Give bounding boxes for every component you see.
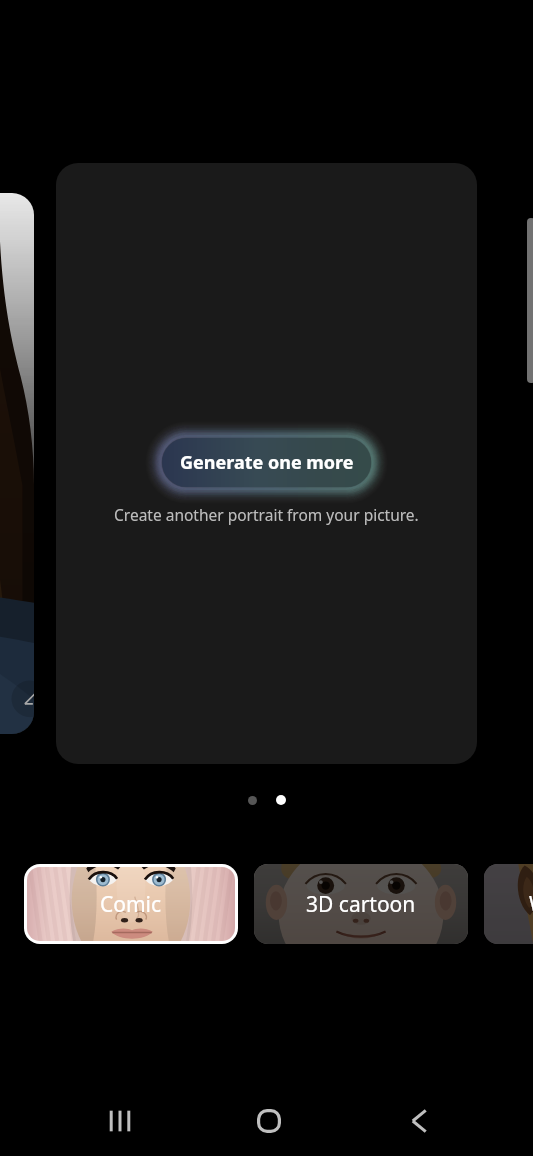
staticText: 3D cartoon <box>306 890 416 919</box>
button[interactable]: Home <box>245 1097 293 1145</box>
staticText: Comic <box>100 890 162 919</box>
staticText: Generate one more <box>180 450 354 475</box>
button[interactable]: Generate one more <box>162 438 371 487</box>
button[interactable]: Recent apps <box>96 1097 144 1145</box>
button[interactable]: Watercolor <box>484 864 533 944</box>
button[interactable]: Generate one more <box>56 163 477 764</box>
staticText: Create another portrait from your pictur… <box>114 504 419 525</box>
button[interactable]: Back <box>395 1097 443 1145</box>
button[interactable]: Comic <box>27 867 235 941</box>
button[interactable]: Previous generated portrait <box>0 193 34 734</box>
staticText: Watercolor <box>529 890 533 919</box>
button[interactable]: 3D cartoon <box>254 864 468 944</box>
